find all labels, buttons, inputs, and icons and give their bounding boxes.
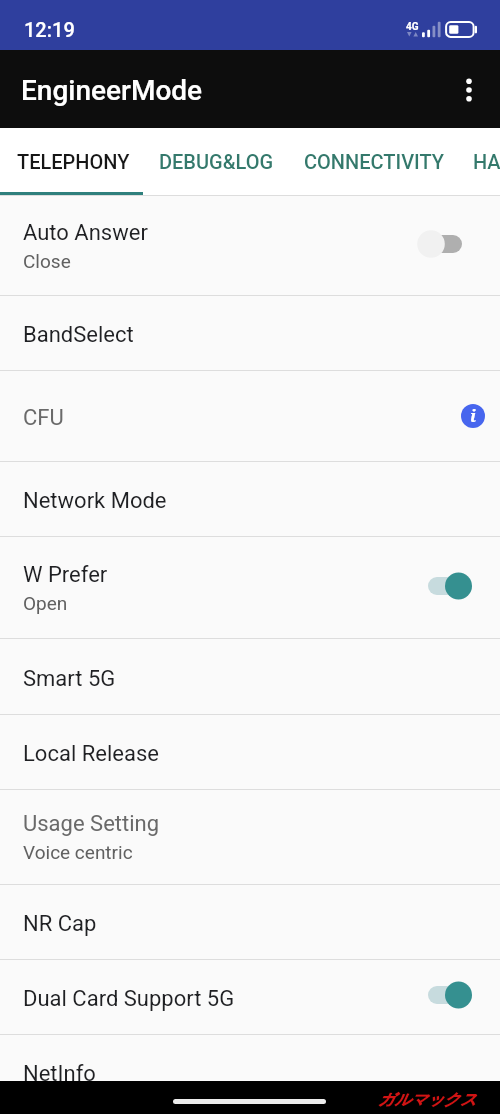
button[interactable]: Local Release <box>0 715 500 789</box>
staticText: EngineerMode <box>21 74 203 107</box>
staticText: ガルマックス <box>378 1090 477 1110</box>
button[interactable]: Network Mode <box>0 462 500 536</box>
button[interactable]: Toggle on <box>421 570 477 602</box>
button[interactable]: CFU <box>0 371 500 461</box>
staticText: Open <box>23 592 68 614</box>
staticText: 12:19 <box>24 18 75 41</box>
staticText: Dual Card Support 5G <box>23 986 235 1012</box>
button[interactable]: Dual Card Support 5G <box>0 960 500 1034</box>
button[interactable]: Smart 5G <box>0 639 500 714</box>
button[interactable]: W Prefer <box>0 537 500 638</box>
staticText: Usage Setting <box>23 811 160 837</box>
staticText: TELEPHONY <box>17 150 130 173</box>
staticText: Network Mode <box>23 488 167 514</box>
staticText: Auto Answer <box>23 220 148 246</box>
staticText: CFU <box>23 405 64 431</box>
staticText: Local Release <box>23 741 159 767</box>
staticText: NetInfo <box>23 1061 96 1087</box>
button[interactable]: CONNECTIVITY <box>292 128 456 195</box>
button[interactable]: Usage Setting <box>0 790 500 884</box>
button[interactable]: NetInfo <box>0 1035 500 1109</box>
staticText: Smart 5G <box>23 666 116 692</box>
button[interactable]: DEBUG&LOG <box>143 128 292 195</box>
staticText: BandSelect <box>23 322 134 348</box>
staticText: NR Cap <box>23 911 97 937</box>
button[interactable]: TELEPHONY <box>0 128 143 195</box>
staticText: i <box>470 404 477 427</box>
button[interactable]: NR Cap <box>0 885 500 959</box>
staticText: Close <box>23 250 71 272</box>
button[interactable]: HARDWARE <box>456 128 500 195</box>
button[interactable]: BandSelect <box>0 296 500 370</box>
button[interactable]: Toggle on <box>421 979 477 1011</box>
staticText: CONNECTIVITY <box>304 150 444 173</box>
button[interactable]: Auto Answer <box>0 196 500 295</box>
button[interactable]: Toggle off <box>421 228 477 260</box>
button[interactable]: More options <box>446 67 492 113</box>
staticText: Voice centric <box>23 841 133 863</box>
button[interactable]: Info <box>453 396 493 436</box>
staticText: W Prefer <box>23 562 108 588</box>
staticText: DEBUG&LOG <box>159 150 274 173</box>
staticText: HARDWARE <box>473 150 500 173</box>
staticText: 4G <box>406 21 419 33</box>
